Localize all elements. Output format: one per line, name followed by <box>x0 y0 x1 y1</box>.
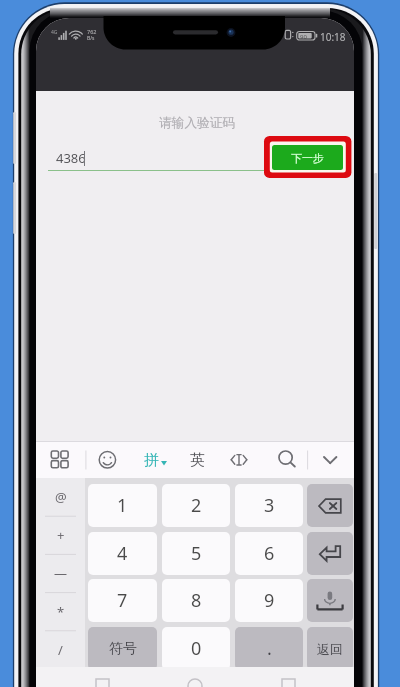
button[interactable]: 0 <box>162 627 230 670</box>
button[interactable]: 3 <box>235 484 303 527</box>
button[interactable]: 2 <box>162 484 230 527</box>
button[interactable]: 5 <box>162 532 230 575</box>
button[interactable]: 8 <box>162 579 230 622</box>
staticText: — <box>54 564 68 582</box>
staticText: 2 <box>191 493 202 518</box>
staticText: 5 <box>191 541 202 566</box>
button[interactable]: Emoji <box>91 442 124 478</box>
button[interactable]: Enter <box>307 532 353 575</box>
button[interactable]: * <box>36 593 85 631</box>
button[interactable]: Search <box>270 442 303 478</box>
staticText: 6 <box>264 541 275 566</box>
staticText: 9 <box>264 588 275 613</box>
button[interactable]: 6 <box>235 532 303 575</box>
staticText: 返回 <box>317 641 343 657</box>
button[interactable]: Backspace <box>307 484 353 527</box>
button[interactable]: 下一步 <box>272 145 343 170</box>
button[interactable]: Return <box>307 627 353 670</box>
staticText: 4G <box>51 29 58 36</box>
button[interactable]: / <box>36 631 85 669</box>
staticText: 10:18 <box>320 30 346 44</box>
button[interactable]: 7 <box>88 579 157 622</box>
button[interactable]: @ <box>36 478 85 516</box>
button[interactable]: — <box>36 554 85 592</box>
staticText: 4 <box>117 541 128 566</box>
staticText: 符号 <box>109 640 137 658</box>
button[interactable]: 英 <box>181 442 213 478</box>
staticText: 0 <box>191 636 202 661</box>
staticText: @ <box>55 488 67 506</box>
button[interactable]: + <box>36 516 85 554</box>
button[interactable]: 4 <box>88 532 157 575</box>
button[interactable]: 1 <box>88 484 157 527</box>
button[interactable]: . <box>235 627 303 670</box>
button[interactable]: Space and voice input <box>307 579 353 622</box>
staticText: 8 <box>191 588 202 613</box>
button[interactable]: 符号 <box>88 627 157 670</box>
staticText: 1 <box>117 493 128 518</box>
staticText: 3 <box>264 493 275 518</box>
staticText: / <box>58 641 63 659</box>
staticText: 762 <box>87 28 97 35</box>
button[interactable]: Keyboard layouts <box>44 442 78 478</box>
button[interactable]: 拼 <box>135 442 175 478</box>
staticText: B/s <box>87 35 95 42</box>
staticText: * <box>57 603 65 621</box>
staticText: 下一步 <box>291 151 324 165</box>
staticText: 7 <box>117 588 128 613</box>
staticText: 请输入验证码 <box>159 115 236 131</box>
staticText: 90 <box>300 33 307 41</box>
staticText: 英 <box>190 451 205 470</box>
button[interactable]: Edit text cursor <box>224 442 256 478</box>
button[interactable]: 9 <box>235 579 303 622</box>
staticText: . <box>267 636 272 661</box>
staticText: + <box>57 526 65 544</box>
staticText: 拼 <box>144 451 159 470</box>
staticText: 4386 <box>56 149 86 167</box>
button[interactable]: Hide keyboard <box>314 442 348 478</box>
